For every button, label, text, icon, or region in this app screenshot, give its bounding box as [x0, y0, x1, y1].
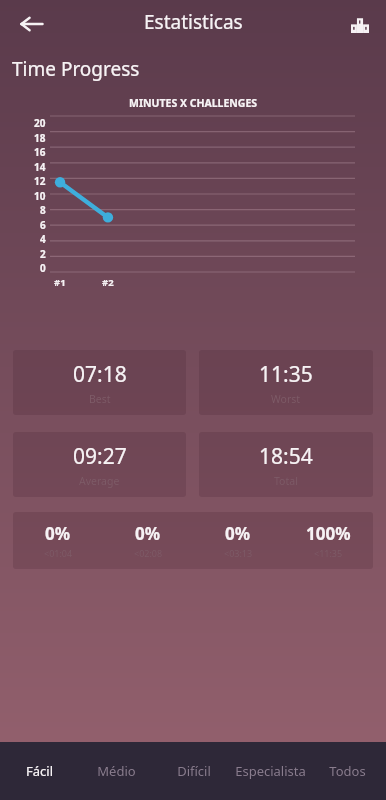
staticText: Médio	[97, 762, 136, 780]
staticText: 0%	[45, 522, 71, 545]
button[interactable]: 0%	[13, 512, 373, 569]
staticText: 14	[34, 160, 46, 171]
staticText: #1	[54, 276, 66, 289]
staticText: Average	[79, 474, 120, 488]
staticText: 20	[34, 116, 46, 127]
staticText: 2	[40, 247, 46, 258]
staticText: Difícil	[177, 762, 211, 780]
staticText: 100%	[306, 522, 351, 545]
staticText: 18	[34, 131, 46, 142]
staticText: Todos	[329, 762, 366, 780]
button[interactable]: 18:54	[199, 432, 373, 497]
staticText: 0	[40, 261, 46, 272]
staticText: 12	[34, 174, 46, 185]
staticText: Fácil	[26, 762, 53, 780]
button[interactable]: Leaderboard	[342, 6, 378, 42]
button[interactable]: 07:18	[13, 350, 186, 415]
staticText: Best	[89, 392, 111, 406]
button[interactable]: Difícil	[155, 742, 232, 800]
button[interactable]: 11:35	[199, 350, 373, 415]
staticText: <11:35	[314, 547, 343, 559]
staticText: <02:08	[134, 547, 163, 559]
staticText: 11:35	[259, 360, 313, 389]
staticText: #2	[102, 276, 114, 289]
staticText: 07:18	[73, 360, 127, 389]
button[interactable]: 09:27	[13, 432, 186, 497]
staticText: 0%	[135, 522, 161, 545]
staticText: 16	[34, 145, 46, 156]
staticText: 09:27	[73, 442, 127, 471]
staticText: 8	[40, 203, 46, 214]
button[interactable]: Fácil	[0, 742, 78, 800]
staticText: 10	[34, 189, 46, 200]
button[interactable]: Back	[14, 6, 50, 42]
staticText: <01:04	[44, 547, 73, 559]
staticText: Especialista	[235, 762, 306, 780]
button[interactable]: Especialista	[232, 742, 309, 800]
staticText: 18:54	[259, 442, 313, 471]
staticText: Estatisticas	[144, 9, 243, 35]
staticText: 0%	[225, 522, 251, 545]
staticText: Time Progress	[12, 56, 140, 82]
staticText: Worst	[271, 392, 301, 406]
staticText: 4	[40, 232, 46, 243]
button[interactable]: Médio	[78, 742, 155, 800]
staticText: 6	[40, 218, 46, 229]
staticText: Total	[274, 474, 298, 488]
staticText: MINUTES X CHALLENGES	[129, 96, 258, 110]
button[interactable]: Todos	[309, 742, 386, 800]
staticText: <03:13	[224, 547, 253, 559]
